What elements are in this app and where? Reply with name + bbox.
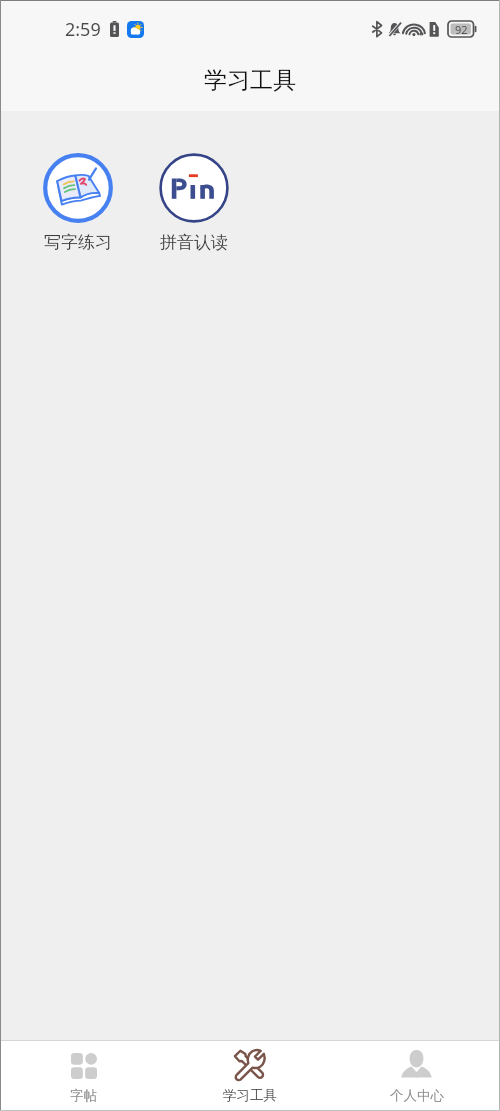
button[interactable]: 写字练习 bbox=[28, 153, 128, 253]
button[interactable]: 拼音认读 bbox=[144, 153, 244, 253]
staticText: 学习工具 bbox=[223, 1087, 277, 1104]
button[interactable]: 字帖 bbox=[0, 1041, 166, 1111]
button[interactable]: 个人中心 bbox=[333, 1041, 500, 1111]
staticText: 学习工具 bbox=[204, 66, 296, 95]
staticText: 92 bbox=[455, 22, 468, 37]
staticText: 2:59 bbox=[65, 17, 101, 42]
button[interactable]: 学习工具 bbox=[166, 1041, 333, 1111]
staticText: 写字练习 bbox=[44, 232, 112, 253]
other: 写字练习 bbox=[43, 153, 113, 223]
other: 拼音认读 bbox=[159, 153, 229, 223]
staticText: 个人中心 bbox=[390, 1087, 444, 1104]
staticText: 字帖 bbox=[70, 1087, 97, 1104]
staticText: 拼音认读 bbox=[160, 232, 228, 253]
